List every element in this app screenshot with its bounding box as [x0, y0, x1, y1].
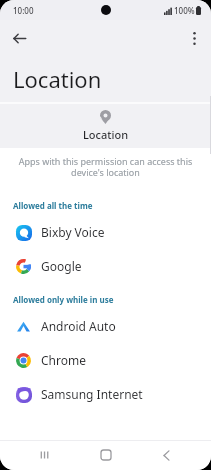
button[interactable]: Android Auto — [0, 309, 211, 343]
staticText: Android Auto — [41, 318, 116, 334]
staticText: Allowed only while in use — [13, 294, 114, 305]
staticText: Bixby Voice — [41, 224, 105, 240]
staticText: Location — [13, 64, 102, 94]
button[interactable]: Back — [6, 25, 32, 51]
staticText: 10:00 — [13, 5, 34, 16]
staticText: Apps with this permission can access thi… — [18, 155, 193, 179]
button[interactable]: Samsung Internet — [0, 377, 211, 411]
staticText: Samsung Internet — [41, 386, 143, 402]
staticText: Allowed all the time — [13, 200, 93, 211]
button[interactable]: More options — [181, 25, 207, 51]
button[interactable]: Bixby Voice — [0, 215, 211, 249]
button[interactable]: Recents — [30, 440, 60, 470]
staticText: Google — [41, 258, 82, 274]
staticText: Chrome — [41, 352, 86, 368]
button[interactable]: Google — [0, 249, 211, 283]
button[interactable]: Home — [91, 440, 121, 470]
button[interactable]: Back — [151, 440, 181, 470]
staticText: 100% — [174, 5, 195, 16]
button[interactable]: Chrome — [0, 343, 211, 377]
staticText: Location — [83, 127, 129, 142]
